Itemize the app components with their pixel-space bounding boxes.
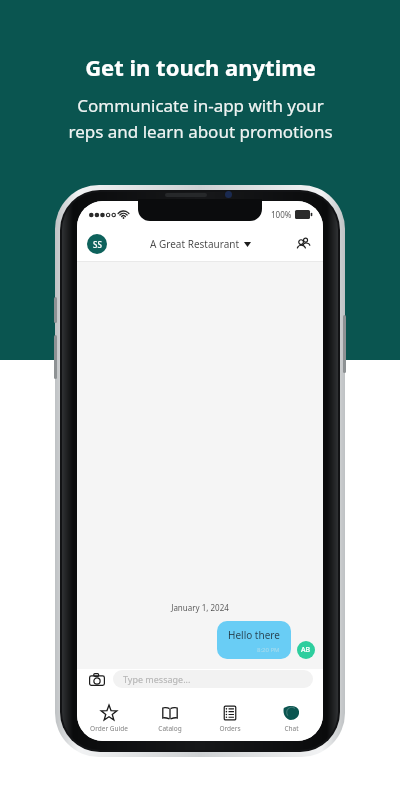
button[interactable]: Attach photo bbox=[87, 669, 107, 689]
button[interactable]: AB bbox=[297, 641, 315, 659]
staticText: Orders bbox=[219, 724, 241, 733]
button[interactable]: Chat bbox=[263, 702, 319, 735]
button[interactable]: A Great Restaurant bbox=[150, 237, 251, 251]
staticText: Hello there bbox=[228, 628, 280, 642]
button[interactable]: Participants bbox=[293, 234, 313, 254]
button[interactable]: Order Guide bbox=[81, 702, 137, 735]
staticText: Communicate in-app with your reps and le… bbox=[68, 94, 333, 143]
staticText: SS bbox=[93, 239, 102, 250]
staticText: Type message... bbox=[123, 673, 191, 685]
button[interactable]: SS bbox=[87, 234, 107, 254]
button[interactable]: Hello there bbox=[217, 621, 291, 659]
staticText: AB bbox=[301, 645, 311, 655]
staticText: Catalog bbox=[158, 724, 182, 733]
button[interactable]: Orders bbox=[202, 702, 258, 735]
staticText: 8:20 PM bbox=[257, 646, 280, 654]
button[interactable]: Catalog bbox=[142, 702, 198, 735]
staticText: January 1, 2024 bbox=[77, 602, 323, 613]
staticText: Get in touch anytime bbox=[85, 52, 316, 82]
staticText: 100% bbox=[271, 209, 292, 220]
staticText: A Great Restaurant bbox=[150, 237, 240, 251]
staticText: Chat bbox=[284, 724, 299, 733]
staticText: Order Guide bbox=[90, 724, 128, 733]
button[interactable]: Type message... bbox=[113, 670, 313, 688]
